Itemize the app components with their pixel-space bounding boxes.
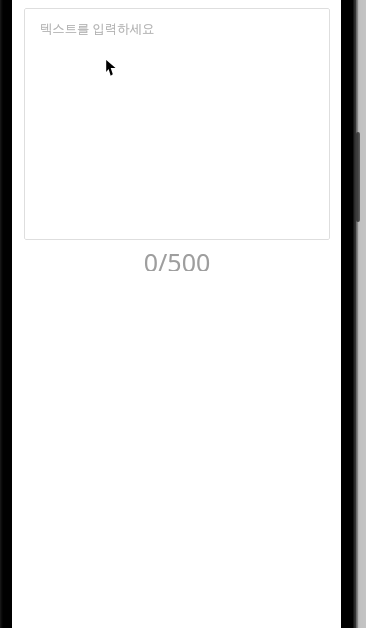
button[interactable]: 텍스트를 입력하세요 [24,8,330,240]
staticText: 텍스트를 입력하세요 [40,20,155,37]
staticText: 0/500 [12,245,342,271]
button[interactable]: Scroll bar [356,132,360,222]
